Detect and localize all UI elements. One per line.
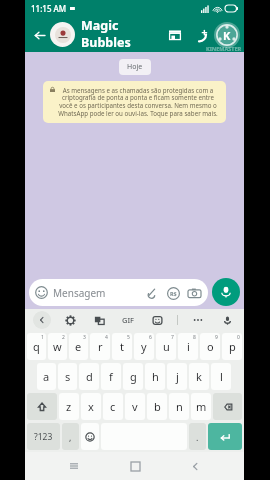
- button[interactable]: Mensagem: [29, 279, 208, 306]
- button[interactable]: Emoji: [81, 423, 99, 450]
- button[interactable]: i: [178, 333, 198, 360]
- staticText: 6: [149, 334, 152, 341]
- button[interactable]: z: [59, 393, 79, 420]
- button[interactable]: j: [167, 363, 187, 390]
- button[interactable]: l: [211, 363, 231, 390]
- button[interactable]: r: [90, 333, 110, 360]
- button[interactable]: ?123: [27, 423, 60, 450]
- button[interactable]: Shift: [27, 393, 57, 420]
- staticText: f: [109, 369, 113, 384]
- button[interactable]: Collapse toolbar: [33, 311, 51, 329]
- button[interactable]: Voice input: [218, 311, 236, 329]
- button[interactable]: Settings: [61, 311, 79, 329]
- button[interactable]: As mensagens e as chamadas são protegida…: [43, 81, 226, 123]
- button[interactable]: Backspace: [213, 393, 242, 420]
- staticText: 7: [171, 334, 174, 341]
- button[interactable]: o: [200, 333, 220, 360]
- staticText: v: [132, 399, 138, 414]
- button[interactable]: b: [147, 393, 167, 420]
- staticText: ,: [69, 431, 72, 443]
- staticText: h: [152, 369, 159, 384]
- button[interactable]: Business profile: [164, 24, 186, 46]
- button[interactable]: Call: [190, 24, 212, 46]
- staticText: j: [176, 369, 179, 384]
- staticText: o: [207, 339, 214, 354]
- button[interactable]: Attach: [144, 285, 160, 301]
- staticText: Mensagem: [53, 286, 106, 300]
- button[interactable]: y: [134, 333, 154, 360]
- staticText: w: [53, 339, 62, 354]
- button[interactable]: h: [145, 363, 165, 390]
- staticText: GIF: [122, 315, 135, 325]
- button[interactable]: ,: [62, 423, 79, 450]
- button[interactable]: Payments: [165, 285, 181, 301]
- staticText: .: [196, 431, 199, 443]
- staticText: d: [86, 369, 93, 384]
- staticText: 9: [215, 334, 218, 341]
- button[interactable]: Home: [123, 454, 147, 478]
- button[interactable]: c: [103, 393, 123, 420]
- staticText: t: [120, 339, 124, 354]
- staticText: q: [33, 339, 40, 354]
- button[interactable]: k: [189, 363, 209, 390]
- button[interactable]: t: [112, 333, 132, 360]
- button[interactable]: n: [169, 393, 189, 420]
- staticText: k: [196, 369, 202, 384]
- staticText: z: [66, 399, 72, 414]
- button[interactable]: e: [69, 333, 88, 360]
- button[interactable]: v: [125, 393, 145, 420]
- staticText: s: [65, 369, 71, 384]
- button[interactable]: Enter: [208, 423, 242, 450]
- staticText: K: [223, 28, 231, 43]
- staticText: y: [141, 339, 147, 354]
- button[interactable]: w: [48, 333, 67, 360]
- button[interactable]: q: [27, 333, 46, 360]
- staticText: 5: [127, 334, 130, 341]
- button[interactable]: Back: [29, 25, 49, 45]
- button[interactable]: Stickers: [148, 311, 166, 329]
- button[interactable]: Magic Bubbles: [81, 17, 164, 52]
- staticText: 2: [62, 334, 65, 341]
- button[interactable]: f: [101, 363, 121, 390]
- staticText: l: [220, 369, 223, 384]
- staticText: b: [154, 399, 161, 414]
- button[interactable]: x: [81, 393, 101, 420]
- button[interactable]: s: [58, 363, 77, 390]
- staticText: u: [163, 339, 170, 354]
- staticText: g: [130, 369, 137, 384]
- staticText: ?123: [34, 431, 53, 443]
- staticText: 0: [237, 334, 240, 341]
- button[interactable]: Recents: [62, 454, 86, 478]
- button[interactable]: Back: [183, 454, 207, 478]
- button[interactable]: Voice message: [212, 278, 240, 306]
- button[interactable]: More options: [189, 311, 207, 329]
- button[interactable]: a: [37, 363, 56, 390]
- button[interactable]: Hoje: [127, 62, 143, 72]
- staticText: m: [196, 399, 207, 414]
- button[interactable]: GIF: [119, 311, 137, 329]
- staticText: 11:15 AM: [31, 3, 67, 14]
- staticText: r: [98, 339, 103, 354]
- button[interactable]: Clipboard: [90, 311, 108, 329]
- staticText: n: [176, 399, 183, 414]
- staticText: As mensagens e as chamadas são protegida…: [57, 86, 219, 118]
- button[interactable]: p: [222, 333, 242, 360]
- button[interactable]: g: [123, 363, 143, 390]
- staticText: c: [110, 399, 116, 414]
- staticText: 4: [105, 334, 108, 341]
- button[interactable]: Camera: [186, 285, 202, 301]
- staticText: R$: [170, 290, 177, 297]
- staticText: e: [75, 339, 82, 354]
- staticText: x: [88, 399, 94, 414]
- staticText: Magic Bubbles: [81, 17, 164, 51]
- staticText: p: [229, 339, 236, 354]
- staticText: 8: [193, 334, 196, 341]
- button[interactable]: u: [156, 333, 176, 360]
- button[interactable]: .: [189, 423, 206, 450]
- staticText: Hoje: [127, 62, 143, 72]
- staticText: a: [43, 369, 50, 384]
- button[interactable]: m: [191, 393, 211, 420]
- button[interactable]: d: [79, 363, 99, 390]
